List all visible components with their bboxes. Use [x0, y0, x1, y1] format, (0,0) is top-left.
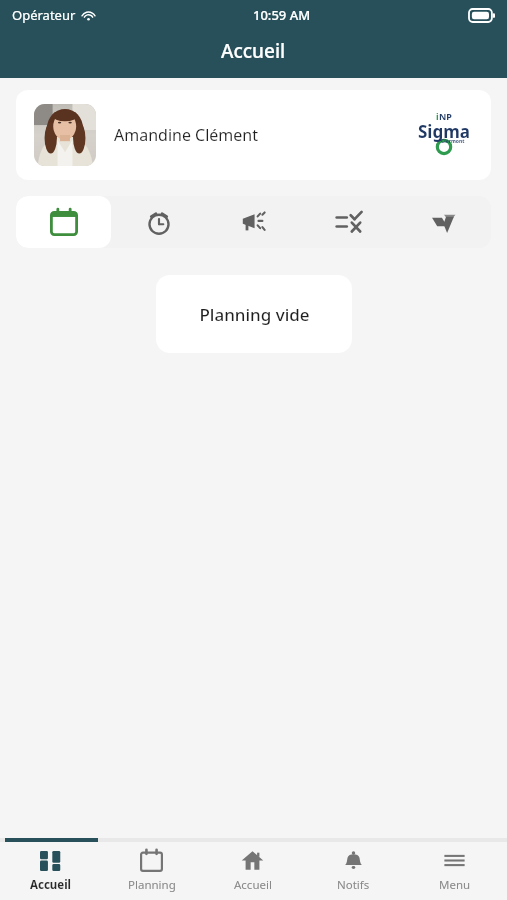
button[interactable]: Amandine Clément	[16, 90, 491, 180]
button[interactable]: Accueil	[0, 842, 101, 900]
button[interactable]: Menu	[404, 842, 505, 900]
staticText: NP	[439, 110, 452, 122]
staticText: Accueil	[221, 38, 286, 64]
staticText: Accueil	[234, 877, 272, 893]
staticText: i	[436, 110, 439, 122]
button[interactable]: Planning	[16, 196, 111, 248]
button[interactable]: Absences	[301, 196, 396, 248]
staticText: Opérateur	[12, 6, 76, 24]
button[interactable]: Notifs	[303, 842, 404, 900]
button[interactable]: Alarmes	[111, 196, 206, 248]
button[interactable]: Planning vide	[156, 275, 352, 353]
button[interactable]: Notes	[396, 196, 491, 248]
staticText: Accueil	[30, 877, 72, 893]
staticText: Planning	[128, 877, 176, 893]
staticText: Clermont	[441, 138, 465, 145]
staticText: Planning vide	[199, 303, 310, 326]
button[interactable]: Planning	[101, 842, 202, 900]
staticText: Amandine Clément	[114, 124, 259, 146]
staticText: 10:59 AM	[253, 6, 311, 24]
button[interactable]: Annonces	[206, 196, 301, 248]
staticText: Menu	[439, 877, 471, 893]
button[interactable]: Accueil	[202, 842, 303, 900]
staticText: Notifs	[337, 877, 370, 893]
staticText: Sigma	[418, 120, 470, 143]
